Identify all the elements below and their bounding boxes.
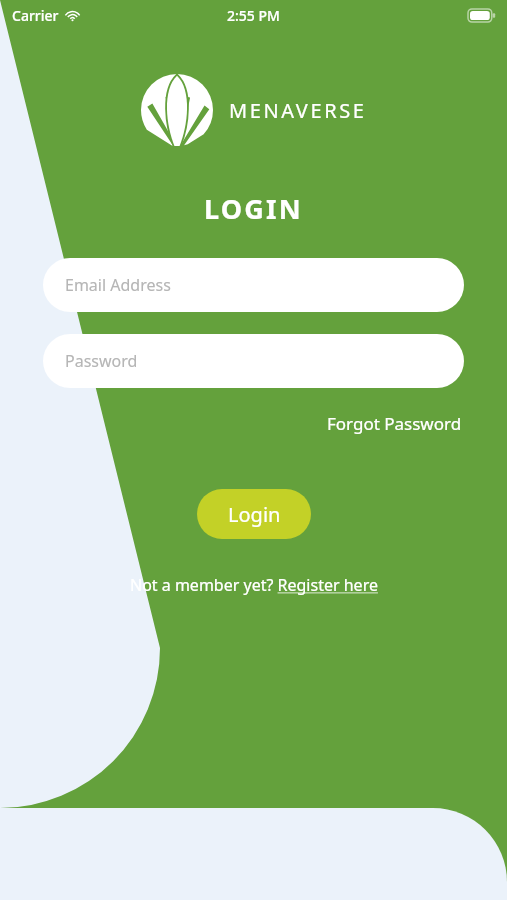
staticText: MENAVERSE	[229, 97, 367, 124]
staticText: Carrier	[12, 6, 59, 25]
staticText: Email Address	[65, 274, 171, 296]
staticText: 2:55 PM	[227, 6, 280, 25]
button[interactable]: Forgot Password	[325, 408, 464, 439]
button[interactable]: Password	[43, 334, 464, 388]
button[interactable]: Login	[197, 489, 311, 539]
other: Menaverse logo	[141, 74, 213, 146]
staticText: Forgot Password	[327, 412, 462, 435]
staticText: Not a member yet? Register here	[130, 574, 378, 596]
button[interactable]: Email Address	[43, 258, 464, 312]
button[interactable]: Not a member yet? Register here	[126, 571, 382, 599]
staticText: Password	[65, 350, 138, 372]
staticText: Login	[228, 501, 281, 528]
staticText: LOGIN	[204, 190, 303, 227]
